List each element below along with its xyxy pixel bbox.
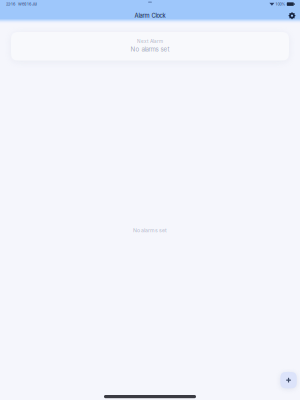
staticText: No alarms set [133,227,167,233]
staticText: Alarm Clock [134,12,165,19]
button[interactable]: Settings [284,9,299,22]
staticText: 100% [276,2,286,6]
staticText: Next Alarm [137,38,163,44]
staticText: 22:16 Wed 16 Jul [6,2,37,6]
button[interactable]: Add alarm [280,372,297,388]
staticText: No alarms set [130,46,169,53]
